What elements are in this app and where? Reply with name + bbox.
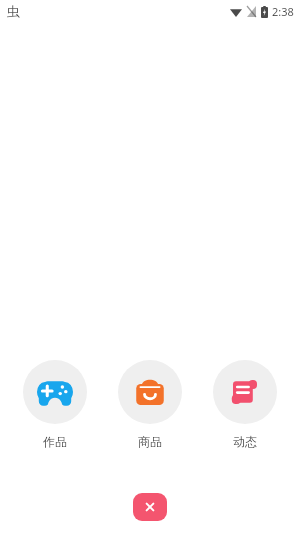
button[interactable]: Close (133, 493, 167, 521)
staticText: 2:38 (272, 4, 294, 19)
staticText: 动态 (233, 434, 257, 449)
staticText: 商品 (138, 434, 162, 449)
staticText: 作品 (43, 434, 67, 449)
button[interactable]: 商品 (110, 360, 190, 449)
staticText: 虫 (7, 3, 20, 19)
button[interactable]: 动态 (205, 360, 285, 449)
button[interactable]: 作品 (15, 360, 95, 449)
